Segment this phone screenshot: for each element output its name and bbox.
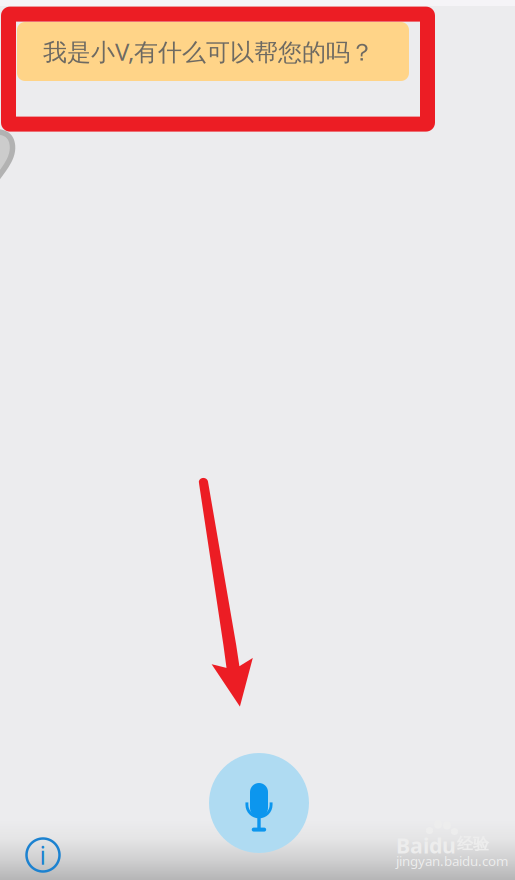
staticText: jingyan.baidu.com xyxy=(396,852,508,870)
staticText: Baidu xyxy=(396,831,456,859)
button[interactable]: Info xyxy=(23,835,63,875)
button[interactable]: Voice input xyxy=(209,753,309,853)
staticText: 我是小V,有什么可以帮您的吗？ xyxy=(43,36,374,67)
staticText: i xyxy=(39,838,46,872)
staticText: 经验 xyxy=(457,834,489,854)
